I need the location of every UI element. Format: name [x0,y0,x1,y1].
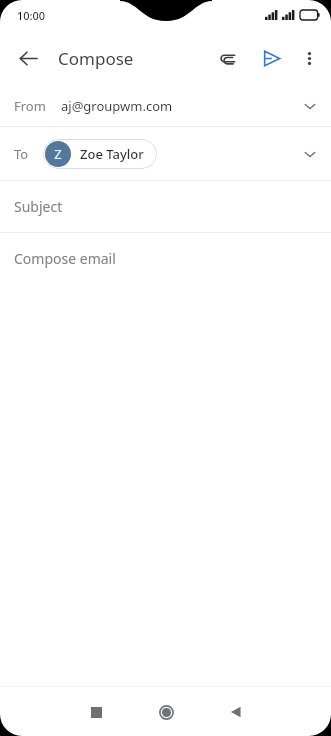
staticText: From [14,97,46,115]
button[interactable]: Home [142,688,190,736]
staticText: Zoe Taylor [80,145,144,163]
button[interactable]: Back [212,688,260,736]
button[interactable]: Recent apps [72,688,120,736]
button[interactable]: To [0,127,331,180]
button[interactable]: From [0,85,331,126]
button[interactable]: Send [251,38,291,78]
staticText: Subject [14,197,63,216]
staticText: aj@groupwm.com [61,97,173,115]
staticText: To [14,145,29,163]
button[interactable]: Attach file [207,38,247,78]
staticText: Z [54,145,62,163]
button[interactable]: Subject [0,181,331,232]
staticText: 10:00 [17,8,46,23]
button[interactable]: More options [291,40,327,76]
button[interactable]: Z [43,139,157,169]
staticText: Compose email [14,249,116,268]
staticText: Compose [58,47,134,70]
button[interactable]: Compose email [0,233,331,283]
button[interactable]: Back [8,38,48,78]
